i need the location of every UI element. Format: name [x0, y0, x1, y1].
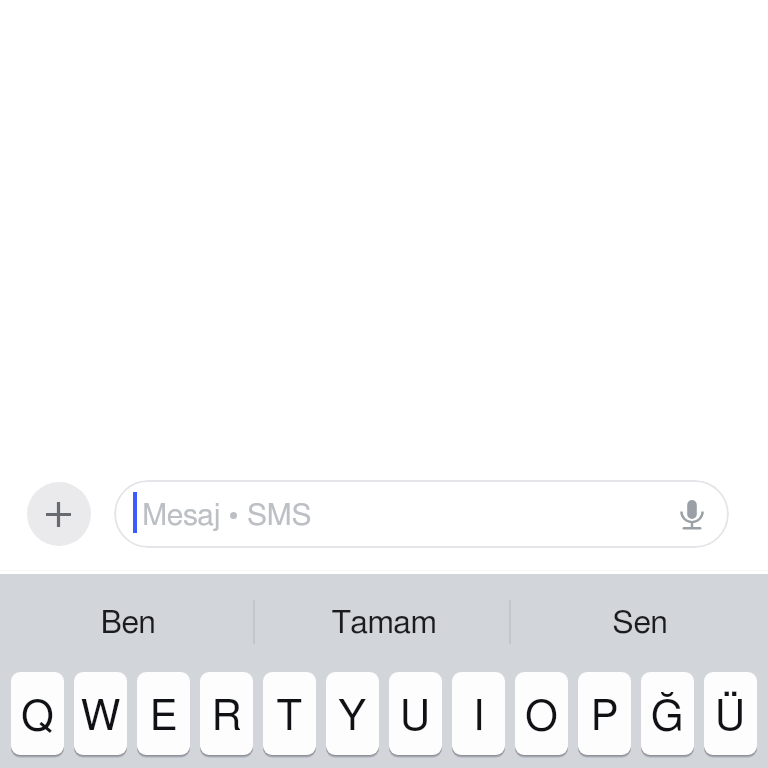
button[interactable]: Q [11, 672, 64, 755]
button[interactable]: Tamam [256, 574, 512, 672]
staticText: T [276, 696, 303, 738]
button[interactable]: Ğ [641, 672, 694, 755]
button[interactable]: Voice input [670, 492, 714, 536]
button[interactable]: Y [326, 672, 379, 755]
staticText: Sen [612, 607, 668, 639]
button[interactable]: W [74, 672, 127, 755]
button[interactable]: P [578, 672, 631, 755]
staticText: Tamam [331, 607, 437, 639]
staticText: E [150, 696, 177, 738]
staticText: Ü [715, 696, 746, 738]
staticText: Y [338, 696, 367, 738]
button[interactable]: Add attachment [27, 482, 91, 546]
staticText: Q [21, 696, 54, 738]
button[interactable]: T [263, 672, 316, 755]
button[interactable]: Mesaj [114, 480, 729, 548]
staticText: SMS [247, 501, 312, 531]
button[interactable]: R [200, 672, 253, 755]
button[interactable]: Ü [704, 672, 757, 755]
staticText: U [400, 696, 431, 738]
button[interactable]: Sen [512, 574, 768, 672]
button[interactable]: E [137, 672, 190, 755]
staticText: Ğ [651, 696, 684, 738]
staticText: Mesaj [142, 501, 221, 531]
staticText: W [81, 696, 121, 738]
staticText: P [591, 696, 619, 738]
staticText: R [212, 696, 242, 738]
button[interactable]: I [452, 672, 505, 755]
staticText: I [473, 696, 485, 738]
staticText: Ben [100, 607, 156, 639]
button[interactable]: Ben [0, 574, 256, 672]
button[interactable]: O [515, 672, 568, 755]
button[interactable]: U [389, 672, 442, 755]
staticText: O [525, 696, 558, 738]
